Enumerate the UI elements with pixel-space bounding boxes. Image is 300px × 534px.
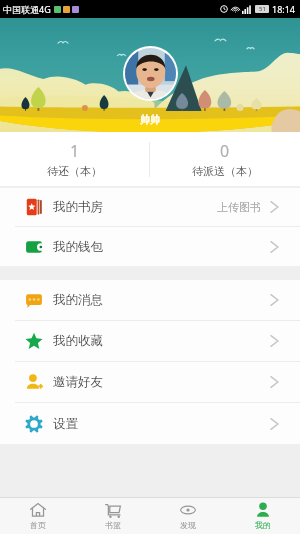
staticText: 发现 bbox=[180, 520, 196, 530]
staticText: 18:14 bbox=[272, 3, 296, 15]
button[interactable]: 设置 bbox=[0, 403, 300, 444]
staticText: 51 bbox=[259, 5, 266, 13]
staticText: 待还（本） bbox=[47, 164, 102, 178]
staticText: 我的消息 bbox=[53, 292, 103, 308]
button[interactable]: 我的收藏 bbox=[0, 321, 300, 362]
staticText: 上传图书 bbox=[217, 200, 261, 214]
button[interactable]: 0 bbox=[150, 132, 300, 186]
staticText: 邀请好友 bbox=[53, 374, 103, 390]
button[interactable]: 首页 bbox=[0, 498, 75, 534]
staticText: 帅帅 bbox=[140, 113, 160, 126]
button[interactable]: 我的消息 bbox=[0, 280, 300, 321]
staticText: 我的 bbox=[255, 520, 271, 530]
button[interactable]: 邀请好友 bbox=[0, 362, 300, 403]
staticText: 1 bbox=[70, 140, 80, 162]
button[interactable]: 书篮 bbox=[75, 498, 150, 534]
button[interactable]: 发现 bbox=[150, 498, 225, 534]
button[interactable]: 我的钱包 bbox=[0, 227, 300, 266]
button[interactable]: Avatar bbox=[125, 48, 176, 99]
staticText: 待派送（本） bbox=[192, 164, 258, 178]
button[interactable]: 我的 bbox=[225, 498, 300, 534]
staticText: 设置 bbox=[53, 416, 78, 432]
staticText: 我的收藏 bbox=[53, 333, 103, 349]
staticText: 我的钱包 bbox=[53, 239, 103, 255]
button[interactable]: 我的书房 bbox=[0, 188, 300, 227]
staticText: 首页 bbox=[30, 520, 46, 530]
staticText: 中国联通4G bbox=[3, 3, 51, 15]
staticText: 我的书房 bbox=[53, 199, 103, 215]
staticText: 0 bbox=[220, 140, 230, 162]
button[interactable]: 1 bbox=[0, 132, 149, 186]
staticText: 书篮 bbox=[105, 520, 121, 530]
